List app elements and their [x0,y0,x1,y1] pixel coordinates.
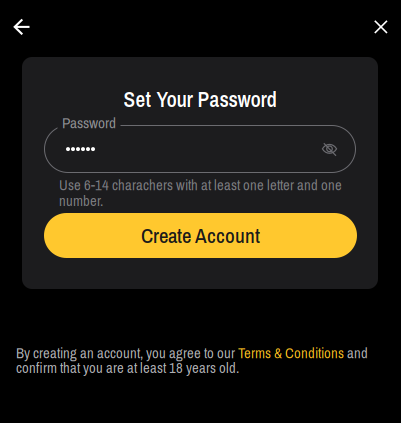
button[interactable]: By creating an account, you agree to our… [16,343,374,377]
staticText: Use 6-14 charachers with at least one le… [59,175,342,210]
staticText: Create Account [141,222,260,249]
staticText: Set Your Password [123,85,276,114]
button[interactable]: Create Account [44,213,357,258]
staticText: By creating an account, you agree to our… [16,343,368,377]
button[interactable]: Close [361,7,401,47]
staticText: Password [62,112,116,133]
button[interactable]: Back [2,7,42,47]
button[interactable]: Show password [312,132,346,166]
